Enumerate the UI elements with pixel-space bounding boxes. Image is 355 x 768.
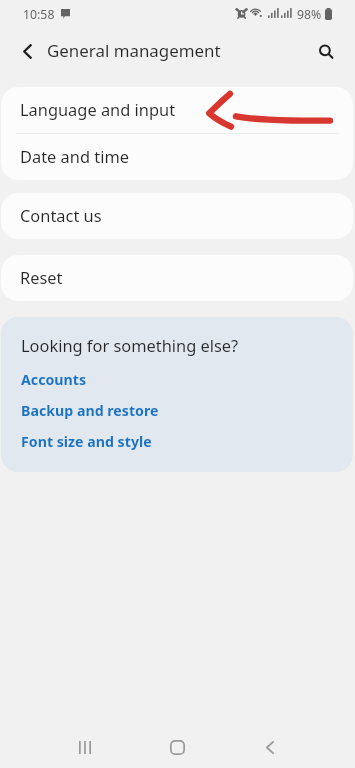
button[interactable]: Font size and style [1, 429, 353, 454]
staticText: 10:58 [23, 6, 55, 23]
button[interactable]: Date and time [1, 134, 353, 180]
staticText: Reset [20, 266, 63, 288]
button[interactable]: Recent apps [63, 725, 107, 768]
button[interactable]: Reset [1, 255, 353, 301]
button[interactable]: Search [306, 32, 346, 72]
staticText: Looking for something else? [21, 334, 239, 356]
staticText: Backup and restore [21, 401, 159, 420]
button[interactable]: Home [155, 725, 199, 768]
staticText: Contact us [20, 204, 102, 226]
button[interactable]: Contact us [1, 193, 353, 239]
staticText: General management [47, 39, 221, 62]
button[interactable]: Navigate up [7, 31, 47, 71]
button[interactable]: Accounts [1, 367, 353, 392]
button[interactable]: Language and input [1, 87, 353, 133]
staticText: Language and input [20, 98, 176, 120]
button[interactable]: Backup and restore [1, 398, 353, 423]
staticText: Date and time [20, 145, 129, 167]
staticText: Font size and style [21, 432, 152, 451]
button[interactable]: Back [248, 725, 292, 768]
staticText: Accounts [21, 370, 87, 389]
staticText: 98% [297, 6, 322, 23]
